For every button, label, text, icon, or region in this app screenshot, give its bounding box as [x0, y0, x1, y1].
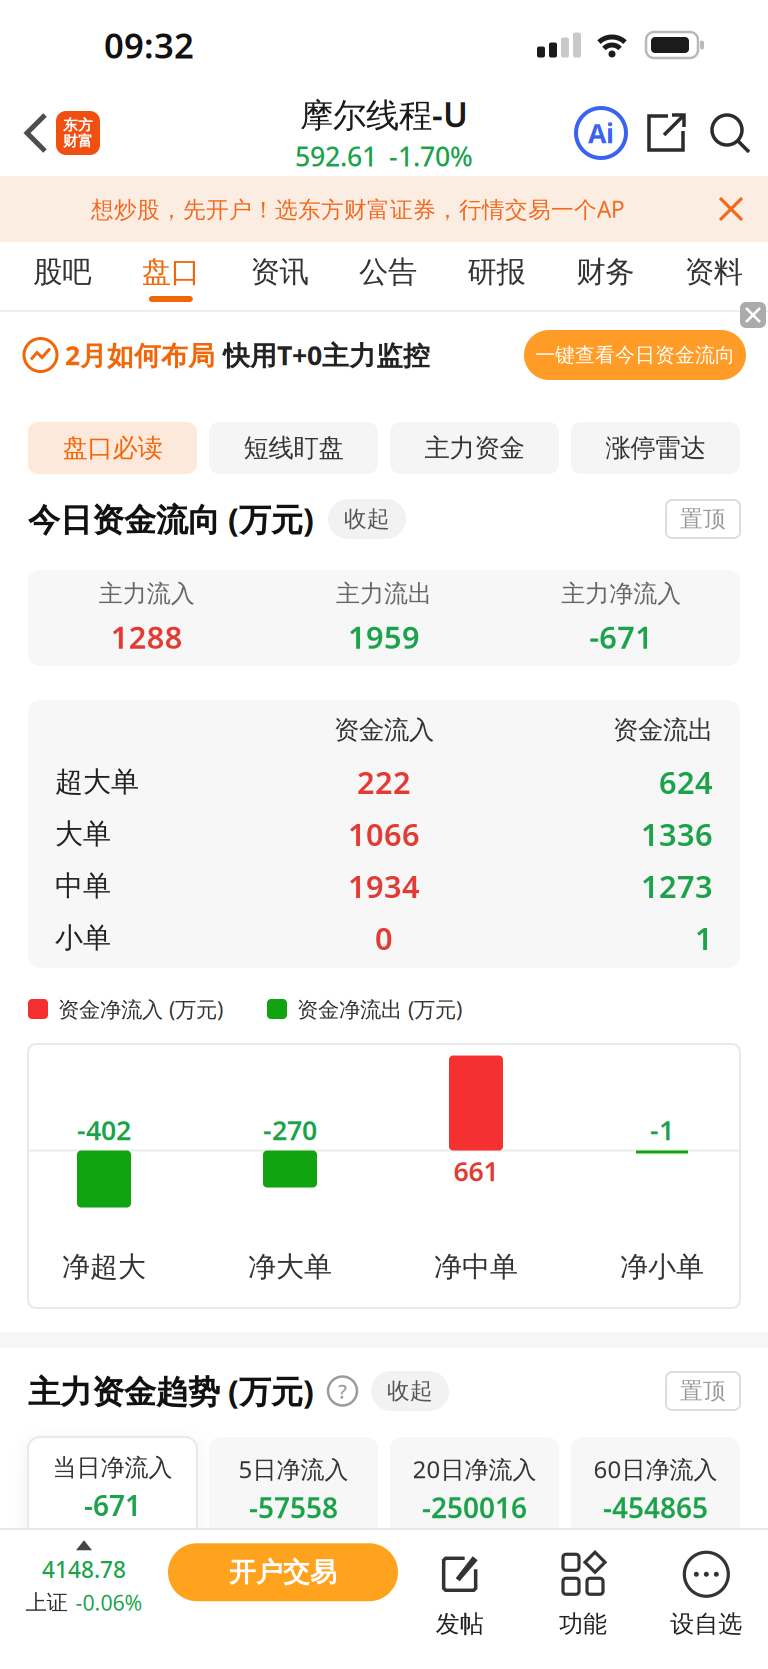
staticText: -270 — [263, 1112, 317, 1148]
button[interactable]: 盘口 — [117, 254, 225, 302]
button[interactable]: 开户交易 — [168, 1535, 398, 1601]
staticText: 4148.78 — [42, 1554, 126, 1584]
button[interactable]: 置顶 — [666, 500, 740, 538]
staticText: 资金净流入 (万元) — [58, 995, 223, 1023]
button[interactable]: 股吧 — [8, 254, 117, 302]
button[interactable]: 盘口必读 — [28, 422, 197, 474]
staticText: 2月如何布局 — [65, 337, 215, 373]
staticText: -250016 — [422, 1489, 527, 1526]
staticText: 1336 — [641, 814, 713, 854]
staticText: 主力流出 — [336, 579, 432, 608]
button[interactable]: 公告 — [334, 254, 442, 302]
button[interactable]: Share — [642, 109, 690, 157]
staticText: 开户交易 — [229, 1556, 337, 1589]
staticText: -1 — [650, 1112, 674, 1148]
button[interactable]: 设自选 — [645, 1549, 768, 1639]
button[interactable]: 5日净流入 — [209, 1437, 378, 1561]
staticText: 盘口 — [142, 254, 200, 290]
staticText: -671 — [589, 616, 653, 657]
staticText: 资金流出 — [613, 714, 713, 745]
staticText: 资讯 — [250, 254, 308, 290]
staticText: 资料 — [685, 254, 743, 290]
staticText: 小单 — [55, 921, 111, 955]
button[interactable]: 收起 — [328, 499, 406, 539]
staticText: 624 — [659, 762, 713, 802]
staticText: 1273 — [641, 866, 713, 906]
staticText: 发帖 — [436, 1609, 484, 1639]
staticText: 研报 — [468, 254, 526, 290]
staticText: 净中单 — [434, 1250, 518, 1284]
staticText: 财务 — [576, 254, 634, 290]
staticText: 主力资金趋势 (万元) — [28, 1370, 314, 1412]
staticText: -1.70% — [389, 138, 473, 174]
staticText: 置顶 — [680, 1377, 726, 1405]
staticText: 设自选 — [670, 1609, 742, 1639]
button[interactable]: 涨停雷达 — [571, 422, 740, 474]
button[interactable]: 财务 — [551, 254, 659, 302]
staticText: 净小单 — [620, 1250, 704, 1284]
staticText: 1288 — [111, 616, 183, 657]
staticText: 想炒股，先开户！选东方财富证券，行情交易一个AP — [91, 194, 625, 224]
button[interactable]: 4148.78 — [0, 1535, 168, 1617]
staticText: 中单 — [55, 869, 111, 903]
button[interactable]: Back — [14, 108, 52, 158]
staticText: 超大单 — [55, 765, 139, 799]
staticText: 1 — [695, 918, 713, 958]
staticText: 快用T+0主力监控 — [223, 337, 430, 373]
button[interactable]: 主力资金 — [390, 422, 559, 474]
staticText: 60日净流入 — [593, 1453, 717, 1485]
button[interactable]: 资讯 — [225, 254, 334, 302]
button[interactable]: Close banner — [716, 194, 768, 224]
staticText: 收起 — [344, 505, 390, 533]
staticText: 09:32 — [104, 22, 194, 68]
staticText: 主力流入 — [99, 579, 195, 608]
button[interactable]: 置顶 — [666, 1372, 740, 1410]
button[interactable]: Close — [742, 312, 768, 338]
staticText: 1934 — [348, 866, 420, 906]
staticText: -671 — [84, 1486, 141, 1524]
staticText: 短线盯盘 — [243, 432, 343, 463]
button[interactable]: Search — [706, 109, 754, 157]
staticText: 置顶 — [680, 505, 726, 533]
staticText: 一键查看今日资金流向 — [535, 343, 735, 367]
button[interactable]: 60日净流入 — [571, 1437, 740, 1561]
staticText: 净超大 — [62, 1250, 146, 1284]
staticText: 净大单 — [248, 1250, 332, 1284]
staticText: 财富 — [63, 132, 93, 150]
staticText: 东方 — [63, 116, 93, 134]
staticText: 资金流入 — [334, 714, 434, 745]
staticText: Ai — [588, 115, 614, 151]
staticText: 今日资金流向 (万元) — [28, 498, 314, 540]
button[interactable]: 一键查看今日资金流向 — [524, 330, 746, 380]
button[interactable]: 20日净流入 — [390, 1437, 559, 1561]
button[interactable]: Help — [328, 1376, 357, 1405]
staticText: 20日净流入 — [412, 1453, 536, 1485]
button[interactable]: 当日净流入 — [28, 1437, 197, 1561]
button[interactable]: 功能 — [521, 1549, 645, 1639]
staticText: 222 — [357, 762, 411, 802]
staticText: 当日净流入 — [52, 1453, 172, 1482]
staticText: -402 — [77, 1112, 131, 1148]
staticText: 收起 — [387, 1377, 433, 1405]
button[interactable]: 研报 — [442, 254, 551, 302]
button[interactable]: 短线盯盘 — [209, 422, 378, 474]
staticText: 661 — [453, 1153, 498, 1189]
staticText: 5日净流入 — [238, 1453, 348, 1485]
button[interactable]: 收起 — [371, 1371, 449, 1411]
button[interactable]: Ai — [576, 108, 626, 158]
staticText: 资金净流出 (万元) — [297, 995, 462, 1023]
staticText: -57558 — [249, 1489, 338, 1526]
button[interactable]: 资料 — [659, 254, 768, 302]
staticText: 功能 — [559, 1609, 607, 1639]
button[interactable]: 发帖 — [398, 1549, 521, 1639]
staticText: 股吧 — [33, 254, 91, 290]
staticText: 上证 — [25, 1589, 67, 1616]
button[interactable]: 东方财富 — [56, 111, 100, 155]
staticText: 盘口必读 — [62, 432, 162, 463]
staticText: ? — [338, 1378, 347, 1404]
staticText: 1066 — [348, 814, 420, 854]
staticText: 主力净流入 — [561, 579, 681, 608]
staticText: 公告 — [359, 254, 417, 290]
staticText: 1959 — [348, 616, 420, 657]
staticText: 主力资金 — [424, 432, 524, 463]
